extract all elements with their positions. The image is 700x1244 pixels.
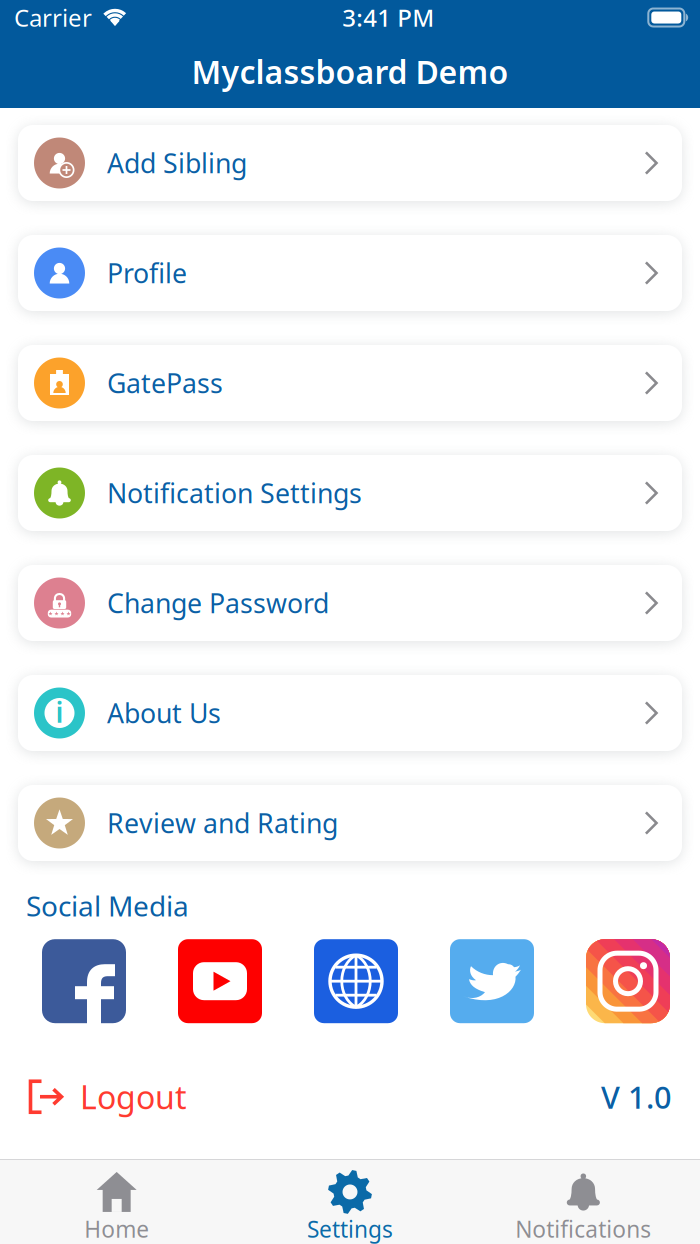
- staticText: About Us: [107, 695, 221, 731]
- button[interactable]: Notification Settings: [18, 455, 682, 531]
- button[interactable]: i: [18, 675, 682, 751]
- button[interactable]: Profile: [18, 235, 682, 311]
- staticText: Notification Settings: [107, 475, 362, 511]
- button[interactable]: Settings: [233, 1159, 467, 1244]
- staticText: Myclassboard Demo: [191, 50, 508, 93]
- staticText: Profile: [107, 255, 187, 291]
- staticText: Settings: [307, 1214, 393, 1244]
- staticText: Home: [84, 1214, 149, 1244]
- staticText: i: [55, 693, 63, 731]
- staticText: V 1.0: [601, 1076, 672, 1117]
- button[interactable]: Review and Rating: [18, 785, 682, 861]
- button[interactable]: Notifications: [467, 1159, 700, 1244]
- button[interactable]: YouTube: [178, 939, 262, 1023]
- staticText: Change Password: [107, 585, 329, 621]
- staticText: Logout: [80, 1075, 187, 1118]
- button[interactable]: Instagram: [586, 939, 670, 1023]
- button[interactable]: Home: [0, 1159, 233, 1244]
- button[interactable]: Twitter: [450, 939, 534, 1023]
- button[interactable]: Add Sibling: [18, 125, 682, 201]
- staticText: Add Sibling: [107, 145, 247, 181]
- button[interactable]: Logout: [28, 1075, 187, 1118]
- button[interactable]: Website: [314, 939, 398, 1023]
- button[interactable]: Change Password: [18, 565, 682, 641]
- staticText: GatePass: [107, 365, 223, 401]
- staticText: 3:41 PM: [342, 2, 434, 33]
- button[interactable]: Facebook: [42, 939, 126, 1023]
- button[interactable]: GatePass: [18, 345, 682, 421]
- staticText: Review and Rating: [107, 805, 338, 841]
- staticText: Carrier: [14, 2, 92, 33]
- staticText: Social Media: [26, 887, 189, 924]
- staticText: Notifications: [515, 1214, 651, 1244]
